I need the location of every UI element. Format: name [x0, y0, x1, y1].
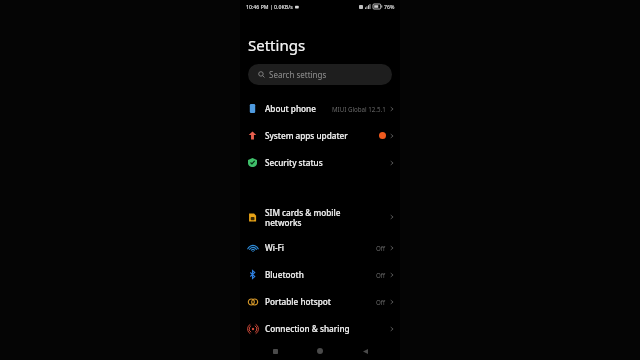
staticText: Security status — [265, 157, 323, 168]
staticText: Search settings — [269, 69, 327, 80]
other: System apps updater — [248, 131, 257, 140]
button[interactable]: Connection and sharing — [240, 315, 400, 342]
other: About phone — [248, 104, 257, 113]
staticText: Off — [376, 244, 386, 252]
other: SIM cards and mobile networks — [248, 213, 257, 222]
button[interactable]: Wi-Fi — [240, 234, 400, 261]
button[interactable]: SIM cards and mobile networks — [240, 200, 400, 234]
button[interactable]: Bluetooth — [240, 261, 400, 288]
button[interactable]: Back — [355, 342, 375, 360]
staticText: Off — [376, 271, 386, 279]
button[interactable]: Security status — [240, 149, 400, 176]
staticText: Portable hotspot — [265, 296, 331, 307]
other: Bluetooth — [248, 270, 257, 279]
staticText: Off — [376, 298, 386, 306]
button[interactable]: Portable hotspot — [240, 288, 400, 315]
staticText: 76% — [384, 3, 395, 10]
staticText: Wi-Fi — [265, 242, 285, 253]
other: Portable hotspot — [248, 297, 258, 307]
button[interactable]: About phone — [240, 95, 400, 122]
staticText: SIM cards & mobile networks — [265, 207, 341, 228]
staticText: Connection & sharing — [265, 323, 350, 334]
button[interactable]: Search settings — [248, 64, 392, 85]
staticText: MIUI Global 12.5.1 — [332, 105, 386, 113]
button[interactable]: System apps updater — [240, 122, 400, 149]
staticText: About phone — [265, 103, 316, 114]
staticText: Settings — [248, 35, 306, 55]
staticText: 10:46 PM | 0.0KB/s — [246, 3, 293, 10]
staticText: Bluetooth — [265, 269, 304, 280]
button[interactable]: Home — [310, 342, 330, 360]
other: Security status — [248, 158, 257, 167]
other: Wi-Fi — [248, 243, 258, 253]
other: Connection and sharing — [248, 324, 258, 334]
staticText: System apps updater — [265, 130, 348, 141]
button[interactable]: Recent apps — [265, 342, 285, 360]
